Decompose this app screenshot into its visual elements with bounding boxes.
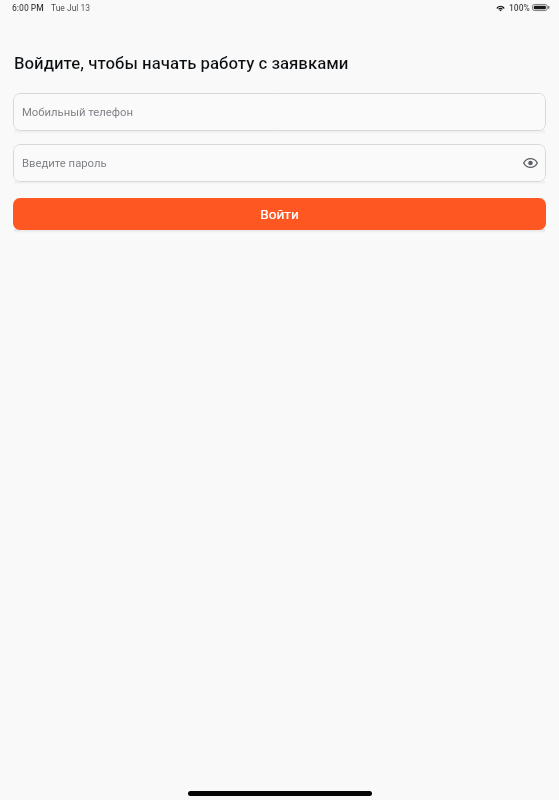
staticText: Tue Jul 13 (51, 3, 91, 13)
staticText: Введите пароль (22, 157, 107, 170)
staticText: 6:00 PM (12, 3, 44, 13)
staticText: Войти (260, 206, 299, 222)
button[interactable]: Показать пароль (519, 152, 541, 174)
staticText: Мобильный телефон (22, 106, 133, 119)
button[interactable]: Войти (13, 198, 546, 230)
button[interactable]: Мобильный телефон (13, 93, 546, 131)
staticText: Войдите, чтобы начать работу с заявками (14, 53, 349, 73)
button[interactable]: Введите пароль (13, 144, 546, 182)
staticText: 100% (509, 3, 530, 13)
